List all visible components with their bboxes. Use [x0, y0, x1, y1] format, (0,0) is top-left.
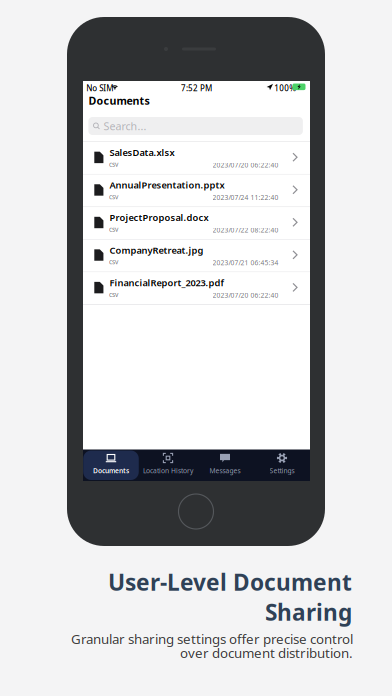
staticText: FinancialReport_2023.pdf: [109, 276, 223, 289]
staticText: Location History: [143, 466, 193, 475]
button[interactable]: Location History: [140, 449, 196, 481]
staticText: over document distribution.: [180, 644, 353, 662]
staticText: Documents: [93, 466, 129, 475]
staticText: ProjectProposal.docx: [109, 211, 208, 224]
staticText: Settings: [269, 466, 294, 475]
staticText: csv: [109, 290, 118, 299]
staticText: 7:52 PM: [181, 83, 212, 93]
staticText: csv: [109, 225, 118, 234]
staticText: 2023/07/21 06:45:34: [212, 258, 278, 267]
staticText: AnnualPresentation.pptx: [109, 179, 224, 191]
button[interactable]: ProjectProposal.docx: [83, 207, 310, 239]
button[interactable]: FinancialReport_2023.pdf: [83, 272, 310, 304]
staticText: csv: [109, 257, 118, 266]
staticText: csv: [109, 160, 118, 169]
staticText: Search...: [104, 119, 147, 133]
staticText: Sharing: [265, 597, 352, 627]
button[interactable]: Documents: [83, 449, 139, 481]
button[interactable]: AnnualPresentation.pptx: [83, 175, 310, 207]
button[interactable]: SalesData.xlsx: [83, 142, 310, 174]
button[interactable]: Settings: [254, 449, 310, 481]
staticText: 2023/07/20 06:22:40: [212, 291, 278, 300]
staticText: 100%: [274, 83, 296, 93]
staticText: 2023/07/20 06:22:40: [212, 160, 278, 169]
staticText: 2023/07/22 08:22:40: [212, 226, 278, 234]
staticText: CompanyRetreat.jpg: [109, 244, 203, 256]
staticText: Documents: [88, 94, 149, 108]
button[interactable]: Messages: [197, 449, 253, 481]
button[interactable]: CompanyRetreat.jpg: [83, 240, 310, 272]
staticText: No SIM: [86, 83, 113, 93]
staticText: csv: [109, 192, 118, 201]
staticText: SalesData.xlsx: [109, 146, 174, 159]
staticText: Messages: [209, 466, 240, 475]
staticText: User-Level Document: [108, 567, 352, 597]
staticText: Granular sharing settings offer precise …: [71, 630, 353, 648]
staticText: 2023/07/24 11:22:40: [212, 193, 278, 202]
